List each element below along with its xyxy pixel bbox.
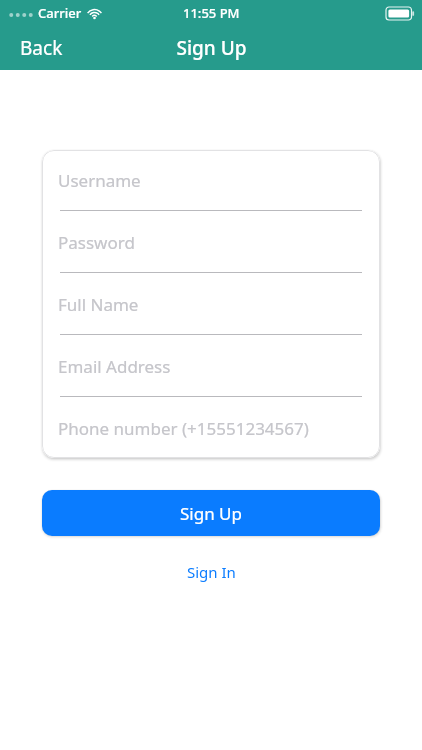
staticText: Sign In — [187, 562, 236, 582]
staticText: Back — [20, 35, 63, 61]
button[interactable]: Email Address — [42, 336, 380, 398]
staticText: Username — [58, 169, 141, 192]
button[interactable]: Sign Up — [42, 490, 380, 536]
staticText: Full Name — [58, 293, 139, 316]
staticText: Carrier — [38, 4, 82, 22]
button[interactable]: Back — [20, 26, 63, 70]
staticText: Sign Up — [176, 35, 247, 61]
button[interactable]: Password — [42, 212, 380, 274]
staticText: Sign Up — [180, 502, 242, 525]
staticText: Phone number (+15551234567) — [58, 417, 309, 440]
staticText: Email Address — [58, 355, 171, 378]
button[interactable]: Username — [42, 150, 380, 212]
button[interactable]: Phone number (+15551234567) — [42, 398, 380, 458]
staticText: 11:55 PM — [183, 4, 240, 22]
button[interactable]: Sign In — [0, 558, 422, 586]
button[interactable]: Full Name — [42, 274, 380, 336]
staticText: Password — [58, 231, 135, 254]
